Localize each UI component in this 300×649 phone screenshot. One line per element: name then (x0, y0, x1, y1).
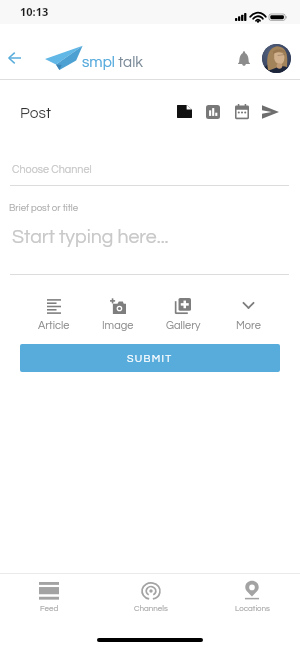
button[interactable]: Poll (201, 100, 224, 123)
button[interactable]: Send (259, 100, 282, 123)
button[interactable]: Channels (119, 581, 183, 612)
staticText: SUBMIT (127, 353, 173, 364)
staticText: Locations (235, 604, 270, 612)
staticText: Start typing here... (12, 227, 169, 247)
button[interactable]: Locations (220, 581, 284, 612)
staticText: Article (38, 320, 70, 331)
button[interactable]: Notifications (232, 46, 256, 70)
staticText: smpl (82, 54, 115, 70)
staticText: 10:13 (20, 4, 49, 19)
button[interactable]: Back (2, 46, 26, 70)
button[interactable]: Article (27, 297, 81, 331)
button[interactable]: Image (91, 297, 145, 331)
button[interactable]: Gallery (156, 297, 210, 331)
button[interactable]: Feed (17, 581, 81, 612)
staticText: Post (20, 105, 52, 121)
staticText: Gallery (166, 320, 201, 331)
button[interactable]: Schedule (230, 100, 253, 123)
button[interactable]: SUBMIT (20, 344, 280, 372)
staticText: talk (115, 54, 144, 70)
button[interactable]: More (221, 297, 275, 331)
staticText: More (236, 320, 261, 331)
button[interactable]: Profile (262, 44, 291, 73)
staticText: Channels (134, 604, 168, 612)
staticText: Choose Channel (12, 164, 92, 175)
staticText: Image (102, 320, 134, 331)
staticText: Feed (40, 604, 59, 612)
button[interactable]: Note (173, 100, 196, 123)
staticText: Brief post or title (9, 203, 79, 213)
